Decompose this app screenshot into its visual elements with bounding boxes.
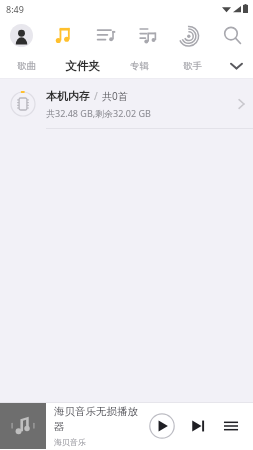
staticText: /	[94, 89, 98, 103]
button[interactable]: Playlist queue	[215, 410, 247, 442]
staticText: 文件夹	[65, 59, 100, 73]
button[interactable]: Expand tabs	[219, 53, 253, 79]
button[interactable]: Play	[145, 409, 179, 443]
staticText: 共32.48 GB,剩余32.02 GB	[46, 107, 151, 119]
button[interactable]: 本机内存	[0, 79, 253, 129]
button[interactable]: Profile	[0, 17, 43, 53]
staticText: 8:49	[6, 3, 24, 15]
button[interactable]: 文件夹	[52, 53, 113, 79]
staticText: 歌手	[183, 60, 202, 72]
button[interactable]: 歌曲	[0, 53, 52, 79]
button[interactable]: 专辑	[113, 53, 166, 79]
button[interactable]: Next	[183, 411, 213, 441]
button[interactable]: Music note	[43, 17, 85, 53]
staticText: 海贝音乐无损播放器	[54, 405, 145, 433]
button[interactable]	[0, 403, 46, 449]
button[interactable]: Song list	[127, 17, 169, 53]
staticText: 歌曲	[17, 60, 36, 72]
button[interactable]: 歌手	[166, 53, 219, 79]
button[interactable]: Scan	[169, 17, 211, 53]
button[interactable]: Search	[211, 17, 253, 53]
staticText: 海贝音乐	[54, 437, 86, 447]
staticText: 本机内存	[46, 89, 90, 103]
staticText: 共0首	[102, 89, 128, 103]
button[interactable]: Playlist	[85, 17, 127, 53]
staticText: 专辑	[130, 60, 149, 72]
